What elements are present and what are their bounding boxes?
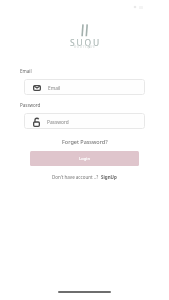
staticText: Password xyxy=(47,119,69,126)
button[interactable]: Forget Password? xyxy=(58,136,112,147)
button[interactable]: Login xyxy=(30,151,139,166)
button[interactable]: Email xyxy=(24,79,145,95)
button[interactable]: SignUp xyxy=(101,174,117,180)
staticText: Email xyxy=(48,85,61,92)
staticText: Login xyxy=(79,156,90,162)
other: Password xyxy=(33,117,40,127)
staticText: Email xyxy=(20,68,32,74)
staticText: SUQU xyxy=(70,37,101,49)
staticText: Don't have account ..? xyxy=(52,174,99,180)
other: Email xyxy=(33,85,41,91)
staticText: BOUTIQUE xyxy=(74,45,96,49)
staticText: Password xyxy=(20,102,41,108)
button[interactable]: Password xyxy=(24,113,145,129)
